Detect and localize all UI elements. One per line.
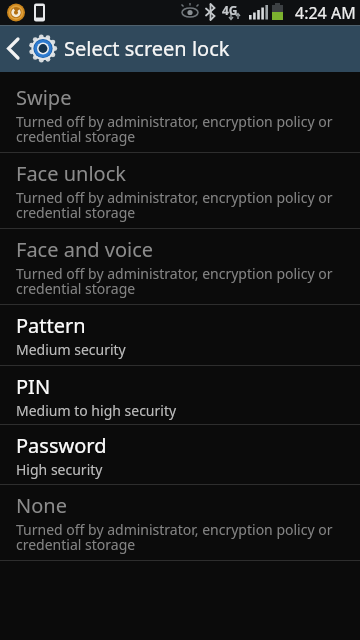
button[interactable]: Face and voice [0,229,360,305]
staticText: Password [16,432,107,459]
staticText: PIN [16,373,51,400]
button[interactable]: Face unlock [0,153,360,229]
staticText: Pattern [16,312,86,339]
staticText: 4:24 AM [295,2,356,24]
button[interactable]: Swipe [0,77,360,153]
button[interactable]: Select screen lock [0,25,360,72]
staticText: None [16,492,67,519]
staticText: 4G [222,2,238,18]
button[interactable]: None [0,485,360,561]
button[interactable]: Password [0,425,360,485]
staticText: Turned off by administrator, encryption … [16,264,333,298]
staticText: Turned off by administrator, encryption … [16,112,333,146]
staticText: Face unlock [16,160,126,187]
staticText: Medium security [16,340,126,359]
staticText: Select screen lock [64,35,230,62]
staticText: Swipe [16,84,72,111]
button[interactable]: Pattern [0,305,360,366]
staticText: Face and voice [16,236,154,263]
staticText: Turned off by administrator, encryption … [16,520,333,554]
staticText: High security [16,460,103,479]
button[interactable]: PIN [0,366,360,425]
staticText: Turned off by administrator, encryption … [16,188,333,222]
staticText: Medium to high security [16,401,177,420]
